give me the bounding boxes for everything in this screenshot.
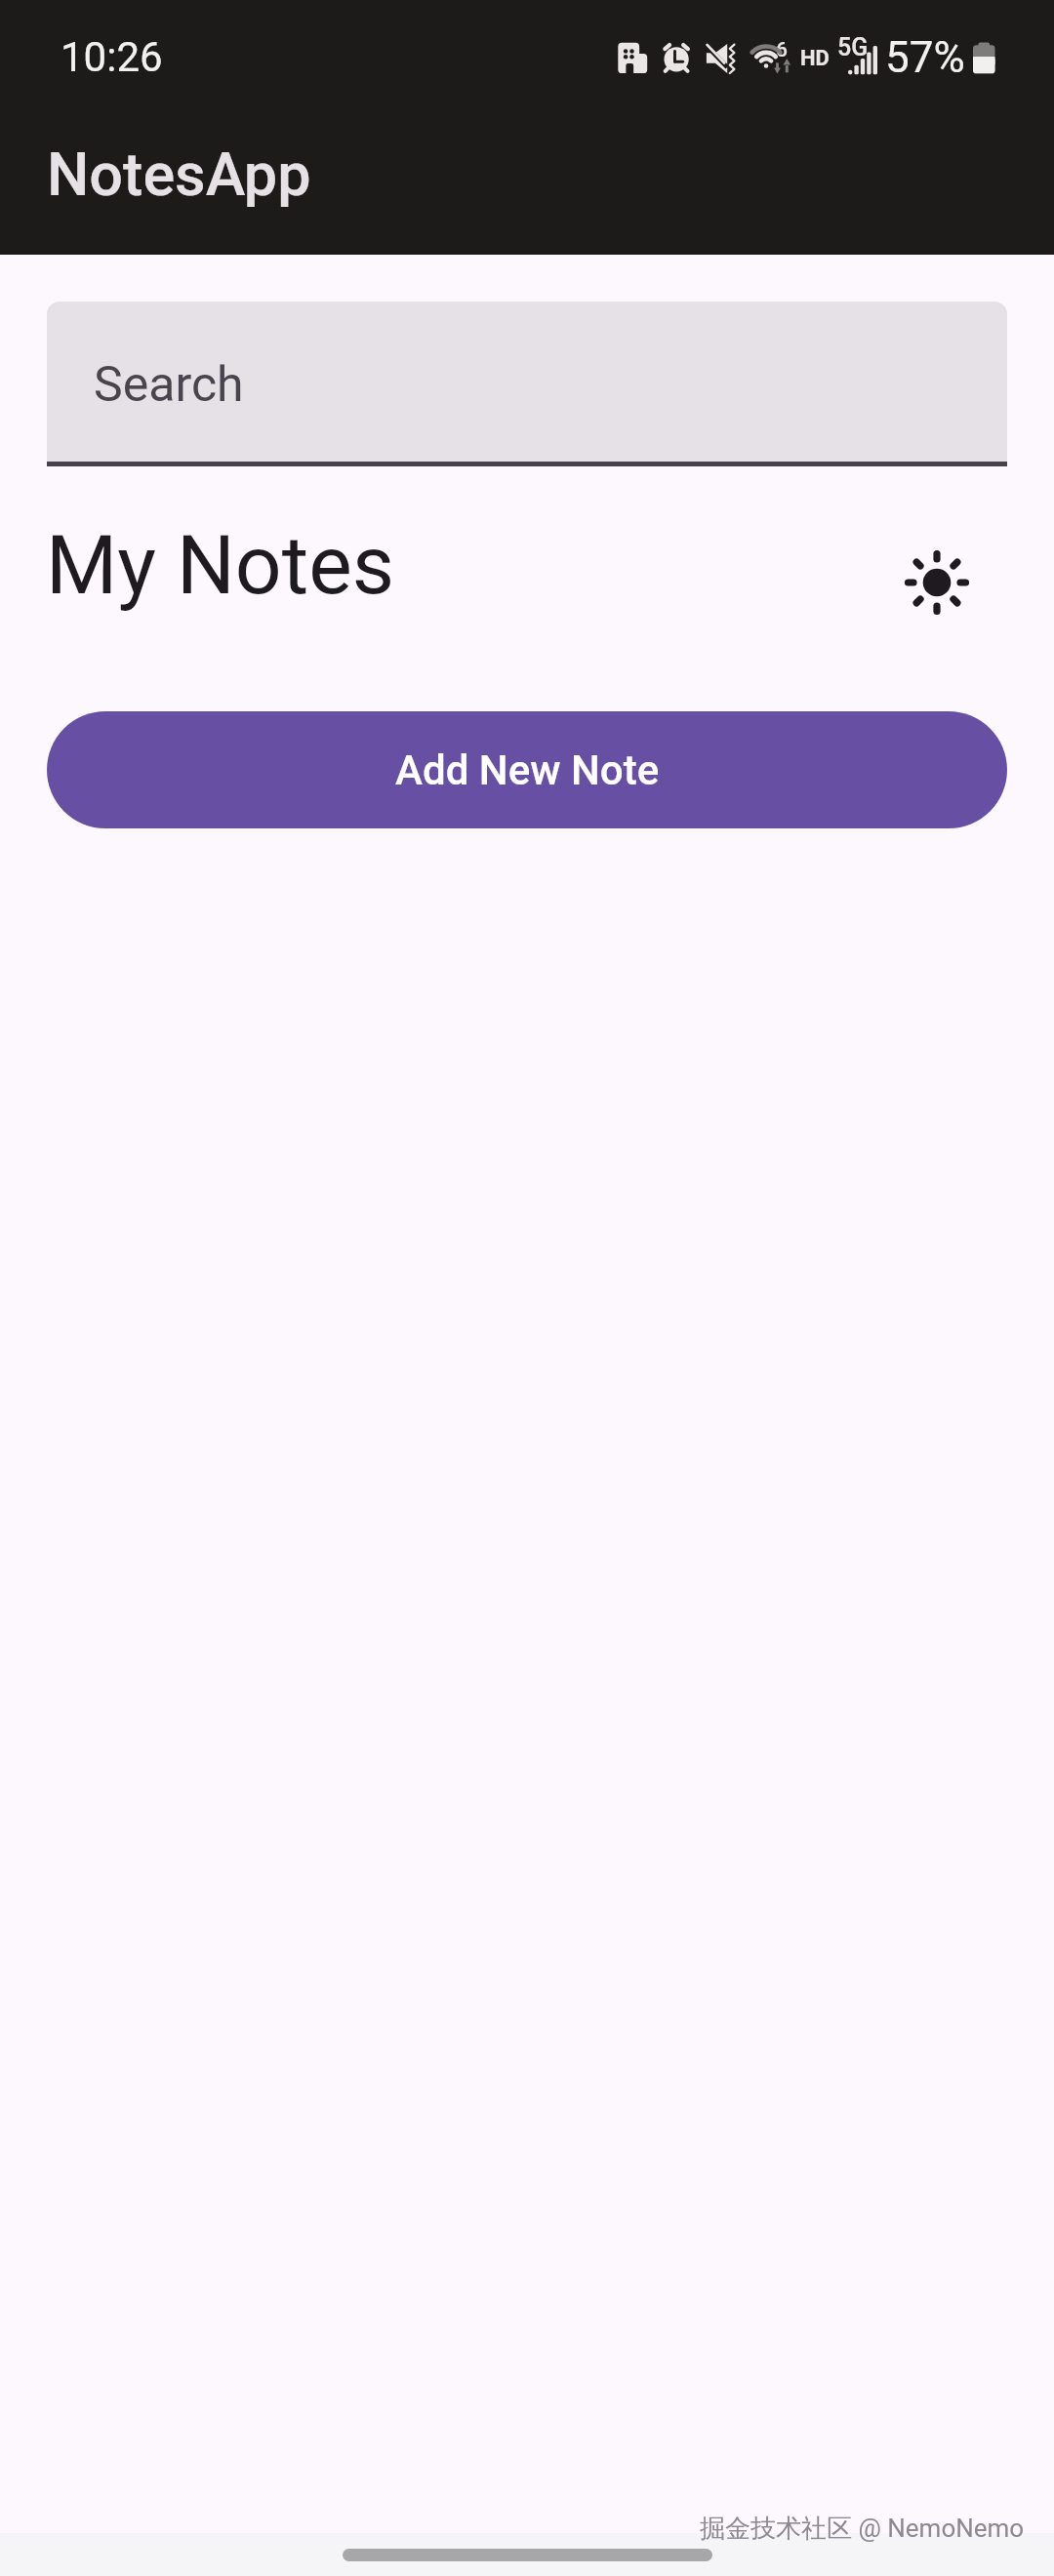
staticText: Add New Note	[395, 746, 660, 794]
staticText: 掘金技术社区 @ NemoNemo	[700, 2513, 1025, 2545]
staticText: NotesApp	[47, 140, 311, 209]
button[interactable]: Toggle brightness	[902, 547, 972, 618]
staticText: 57%	[885, 32, 965, 83]
staticText: HD	[800, 46, 830, 71]
button[interactable]: Add New Note	[47, 711, 1007, 828]
staticText: 5G	[837, 33, 869, 61]
staticText: Search	[94, 356, 244, 414]
button[interactable]: Search	[47, 302, 1007, 466]
staticText: My Notes	[46, 517, 395, 613]
staticText: 6	[776, 38, 788, 62]
staticText: 10:26	[61, 33, 163, 81]
